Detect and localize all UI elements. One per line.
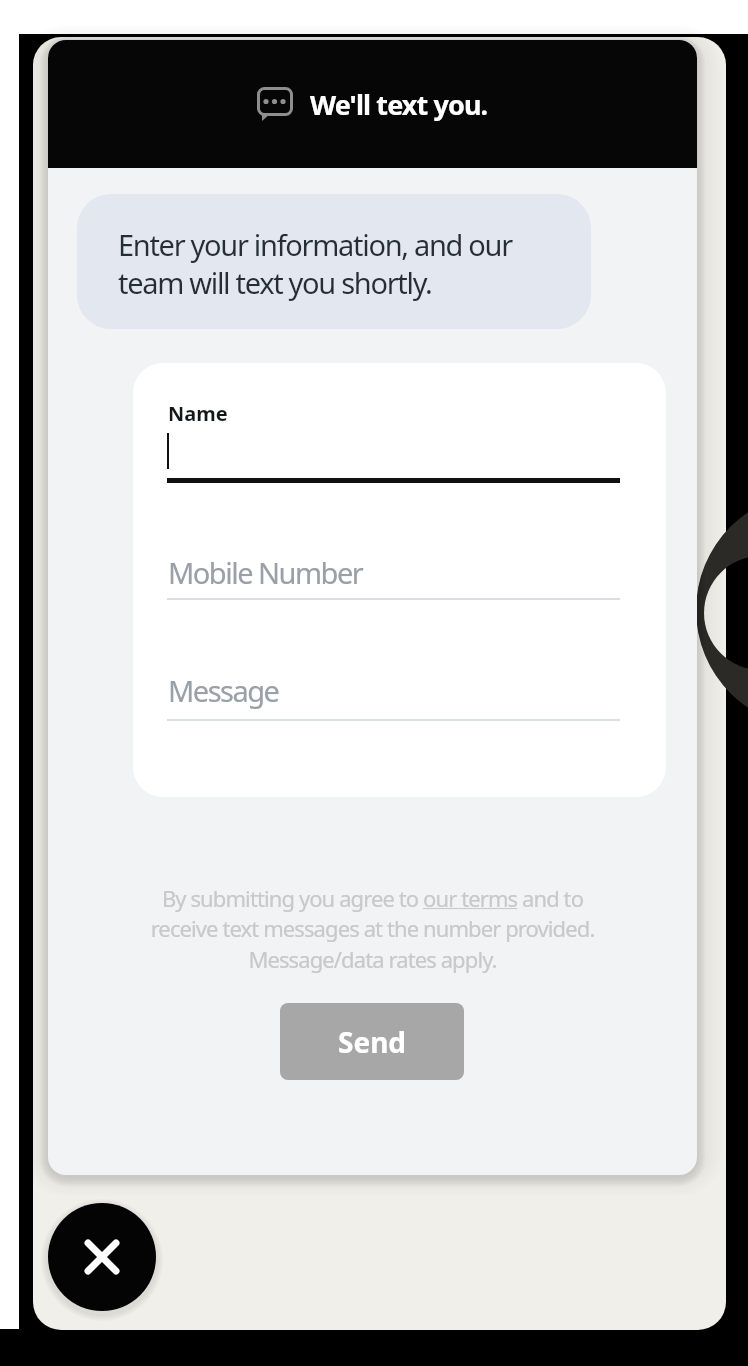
- button[interactable]: [167, 391, 620, 483]
- button[interactable]: [167, 541, 620, 600]
- button[interactable]: [167, 659, 620, 721]
- button[interactable]: Send: [280, 1003, 464, 1080]
- staticText: Name: [168, 400, 228, 427]
- button[interactable]: [48, 1203, 156, 1311]
- staticText: Mobile Number: [168, 553, 363, 592]
- staticText: Send: [338, 1023, 407, 1061]
- staticText: By submitting you agree to our terms and…: [108, 883, 637, 975]
- staticText: Enter your information, and our team wil…: [118, 225, 512, 302]
- staticText: Message: [168, 671, 279, 710]
- staticText: We'll text you.: [310, 86, 488, 123]
